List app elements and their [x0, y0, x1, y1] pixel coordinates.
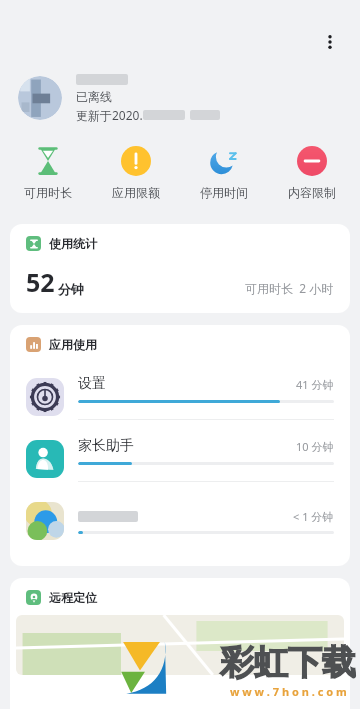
- button[interactable]: 应用使用: [10, 325, 350, 566]
- staticText: 彩虹下载: [220, 641, 356, 684]
- staticText: 内容限制: [288, 185, 336, 200]
- button[interactable]: 已离线: [0, 70, 360, 126]
- staticText: w w w . 7 h o n . c o m: [230, 684, 347, 699]
- button[interactable]: More options: [316, 28, 344, 56]
- staticText: 使用统计: [49, 236, 97, 251]
- staticText: 可用时长 2 小时: [245, 280, 334, 296]
- staticText: < 1 分钟: [293, 509, 334, 524]
- staticText: 设置: [78, 375, 106, 393]
- button[interactable]: 使用统计: [10, 224, 350, 313]
- staticText: 可用时长: [24, 185, 72, 200]
- staticText: 应用使用: [49, 337, 97, 352]
- staticText: 52: [26, 265, 55, 299]
- staticText: 分钟: [58, 281, 84, 297]
- staticText: 10 分钟: [296, 439, 334, 454]
- staticText: 更新于2020.: [76, 107, 143, 123]
- button[interactable]: 设置: [10, 366, 350, 428]
- staticText: 已离线: [76, 89, 112, 104]
- button[interactable]: 停用时间: [184, 144, 264, 202]
- button[interactable]: 内容限制: [272, 144, 352, 202]
- staticText: 远程定位: [49, 590, 97, 605]
- staticText: 41 分钟: [296, 377, 334, 392]
- button[interactable]: 远程定位: [10, 578, 350, 709]
- button[interactable]: 家长助手: [10, 428, 350, 490]
- button[interactable]: 应用限额: [96, 144, 176, 202]
- button[interactable]: 可用时长: [8, 144, 88, 202]
- staticText: 家长助手: [78, 437, 134, 455]
- staticText: 停用时间: [200, 185, 248, 200]
- staticText: 应用限额: [112, 185, 160, 200]
- button[interactable]: < 1 分钟: [10, 490, 350, 552]
